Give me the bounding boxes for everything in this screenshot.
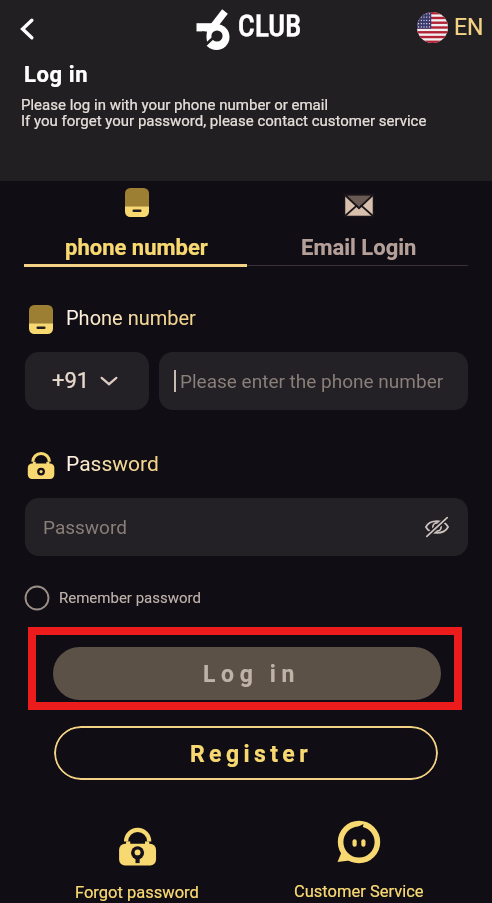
- button[interactable]: Back: [8, 10, 46, 48]
- staticText: Log in: [203, 661, 300, 688]
- staticText: Log in: [24, 62, 89, 88]
- button[interactable]: Show password: [420, 510, 454, 544]
- staticText: Remember password: [59, 589, 201, 607]
- staticText: phone number: [65, 235, 208, 261]
- button[interactable]: Remember password: [22, 583, 203, 613]
- staticText: Password: [66, 452, 159, 477]
- staticText: If you forget your password, please cont…: [21, 112, 427, 130]
- staticText: Forgot password: [75, 883, 199, 902]
- staticText: CLUB: [238, 9, 302, 43]
- button[interactable]: +91: [25, 352, 149, 410]
- button[interactable]: Password: [25, 498, 468, 556]
- button[interactable]: Forgot password: [62, 818, 212, 902]
- staticText: Please log in with your phone number or …: [21, 96, 329, 114]
- button[interactable]: Email Login: [249, 188, 468, 261]
- staticText: Customer Service: [294, 882, 424, 901]
- staticText: Email Login: [301, 235, 417, 261]
- staticText: Register: [190, 741, 312, 768]
- button[interactable]: Log in: [53, 647, 441, 700]
- staticText: Please enter the phone number: [180, 370, 444, 392]
- staticText: +91: [52, 368, 90, 394]
- button[interactable]: Register: [54, 726, 438, 780]
- button[interactable]: phone number: [24, 188, 249, 261]
- button[interactable]: Customer Service: [284, 820, 434, 901]
- staticText: Password: [43, 516, 127, 538]
- staticText: EN: [454, 14, 484, 41]
- button[interactable]: EN: [417, 12, 484, 43]
- button[interactable]: Please enter the phone number: [159, 352, 468, 410]
- staticText: Phone number: [66, 306, 196, 329]
